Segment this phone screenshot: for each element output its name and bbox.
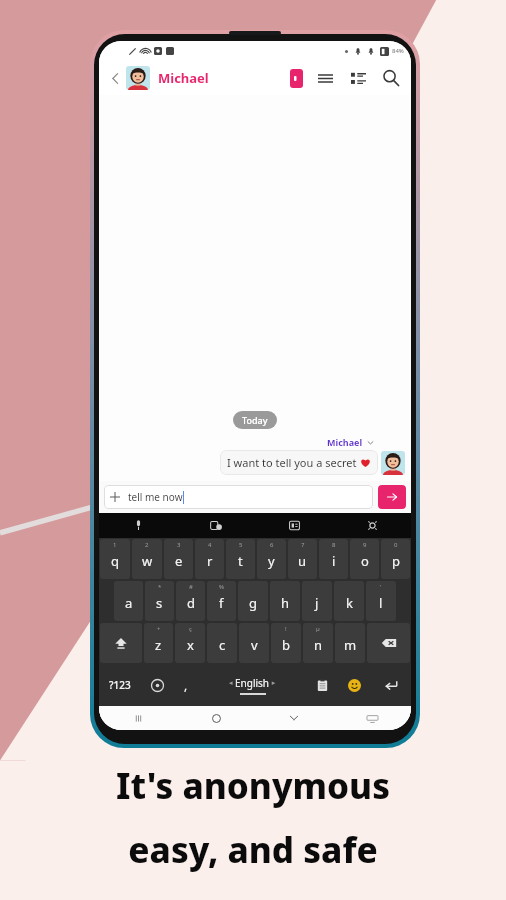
button[interactable]: grid — [255, 513, 333, 538]
button[interactable]: tell me now — [104, 485, 373, 509]
button[interactable]: Search — [379, 66, 403, 90]
staticText: It's anonymous — [116, 762, 390, 810]
staticText: l — [379, 594, 383, 612]
staticText: + — [157, 625, 161, 633]
staticText: I want to tell you a secret — [227, 455, 360, 470]
staticText: k — [346, 594, 353, 612]
staticText: 9 — [363, 541, 367, 549]
button[interactable]: j — [302, 581, 332, 621]
button[interactable]: 2 — [132, 539, 162, 579]
staticText: t — [238, 552, 243, 570]
button[interactable]: Key — [367, 623, 410, 663]
staticText: p — [392, 552, 400, 570]
button[interactable]: Settings — [141, 664, 173, 706]
staticText: f — [219, 594, 224, 612]
button[interactable]: sticker — [177, 513, 255, 538]
staticText: ! — [285, 625, 287, 633]
staticText: g — [249, 594, 257, 612]
staticText: e — [175, 552, 183, 570]
staticText: u — [298, 552, 307, 570]
staticText: ' — [380, 583, 382, 591]
staticText: s — [156, 594, 163, 612]
button[interactable]: Secrets — [290, 69, 303, 88]
staticText: b — [282, 636, 290, 654]
staticText: , — [184, 677, 188, 693]
button[interactable]: ! — [271, 623, 301, 663]
staticText: q — [111, 552, 119, 570]
button[interactable]: * — [145, 581, 174, 621]
button[interactable]: k — [334, 581, 364, 621]
staticText: n — [314, 636, 323, 654]
button[interactable]: + — [144, 623, 173, 663]
button[interactable]: a — [114, 581, 143, 621]
button[interactable]: 6 — [257, 539, 286, 579]
button[interactable]: 3 — [164, 539, 193, 579]
button[interactable]: , — [173, 664, 198, 706]
button[interactable]: settings — [333, 513, 411, 538]
button[interactable]: ' — [366, 581, 396, 621]
staticText: r — [207, 552, 213, 570]
button[interactable]: Send — [378, 485, 406, 509]
button[interactable]: Clipboard — [306, 664, 338, 706]
button[interactable]: h — [270, 581, 300, 621]
button[interactable]: µ — [303, 623, 333, 663]
staticText: 2 — [145, 541, 149, 549]
button[interactable]: 0 — [381, 539, 410, 579]
button[interactable]: 7 — [288, 539, 317, 579]
staticText: % — [219, 583, 224, 591]
button[interactable]: % — [207, 581, 236, 621]
staticText: Michael — [158, 69, 209, 87]
staticText: µ — [316, 625, 320, 633]
staticText: 3 — [177, 541, 181, 549]
staticText: j — [315, 594, 319, 612]
staticText: 4 — [208, 541, 212, 549]
staticText: z — [155, 636, 162, 654]
button[interactable]: # — [176, 581, 205, 621]
staticText: Michael — [327, 436, 363, 448]
button[interactable]: Back — [105, 68, 125, 88]
button[interactable]: Space — [198, 664, 306, 706]
button[interactable]: g — [238, 581, 268, 621]
staticText: a — [125, 594, 133, 612]
button[interactable]: mic — [99, 513, 177, 538]
button[interactable]: 5 — [226, 539, 255, 579]
staticText: m — [344, 636, 357, 654]
button[interactable]: 9 — [350, 539, 379, 579]
staticText: 8 — [332, 541, 336, 549]
button[interactable]: Key — [100, 623, 142, 663]
staticText: easy, and safe — [128, 826, 378, 874]
staticText: c — [219, 636, 226, 654]
button[interactable]: ?123 — [99, 664, 141, 706]
staticText: English — [235, 676, 270, 690]
staticText: ◂ — [229, 678, 235, 688]
button[interactable]: ç — [175, 623, 205, 663]
button[interactable]: Enter — [370, 664, 411, 706]
staticText: Today — [242, 414, 268, 426]
staticText: h — [281, 594, 290, 612]
button[interactable]: Emoji — [338, 664, 370, 706]
staticText: ▸ — [270, 678, 276, 688]
button[interactable]: m — [335, 623, 365, 663]
staticText: ç — [189, 625, 192, 633]
staticText: 5 — [239, 541, 243, 549]
staticText: # — [189, 583, 193, 591]
button[interactable]: Home — [177, 706, 255, 730]
button[interactable]: Menu — [314, 67, 336, 89]
staticText: x — [187, 636, 194, 654]
button[interactable]: v — [239, 623, 269, 663]
button[interactable]: 8 — [319, 539, 348, 579]
staticText: w — [142, 552, 153, 570]
staticText: 7 — [301, 541, 305, 549]
staticText: v — [251, 636, 258, 654]
button[interactable]: Hide keyboard — [333, 706, 411, 730]
staticText: * — [158, 583, 162, 591]
button[interactable]: Back — [255, 706, 333, 730]
staticText: 0 — [394, 541, 398, 549]
staticText: tell me now — [128, 490, 183, 504]
button[interactable]: c — [207, 623, 237, 663]
staticText: o — [361, 552, 369, 570]
button[interactable]: 4 — [195, 539, 224, 579]
button[interactable]: Grid view — [347, 67, 369, 89]
button[interactable]: 1 — [100, 539, 130, 579]
button[interactable]: Recents — [99, 706, 177, 730]
